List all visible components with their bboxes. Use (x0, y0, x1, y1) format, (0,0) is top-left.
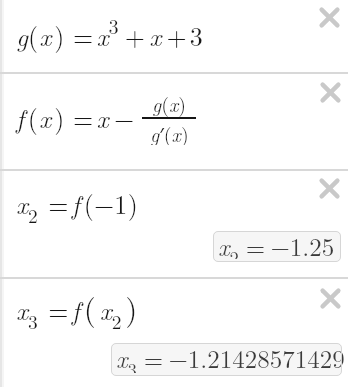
button[interactable] (0, 0, 348, 72)
button[interactable] (319, 178, 340, 199)
staticText: g( x ) = x3 + x + 3 (16, 11, 203, 53)
staticText: g(x) (152, 89, 187, 117)
button[interactable]: x3 = −1.21428571429 (111, 343, 342, 376)
staticText: g′(x) (150, 119, 189, 145)
button[interactable]: x2 = −1.25 (213, 231, 341, 262)
button[interactable] (320, 82, 341, 103)
button[interactable] (0, 73, 348, 169)
staticText: x3 = f ( x2 ) (16, 285, 138, 335)
staticText: f ( x ) = x − (16, 99, 142, 136)
button[interactable] (0, 170, 348, 277)
button[interactable] (319, 7, 340, 28)
staticText: x3 = −1.21428571429 (116, 340, 345, 373)
staticText: x2 = −1.25 (218, 228, 335, 259)
staticText: x2 = f ( −1 ) (16, 179, 138, 229)
button[interactable] (0, 279, 348, 387)
button[interactable] (320, 288, 341, 309)
